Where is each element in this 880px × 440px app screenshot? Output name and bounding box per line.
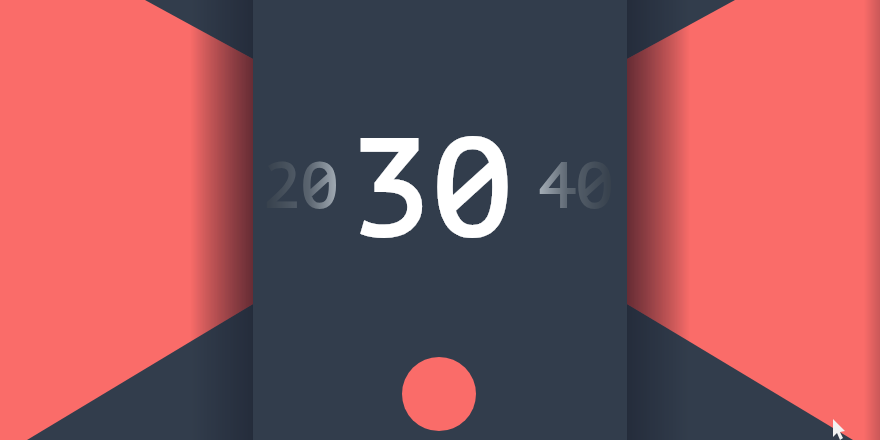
button[interactable]: 30 bbox=[351, 115, 513, 266]
button[interactable] bbox=[402, 357, 476, 431]
button[interactable]: 40 bbox=[538, 151, 614, 222]
button[interactable]: 20 bbox=[263, 151, 339, 222]
